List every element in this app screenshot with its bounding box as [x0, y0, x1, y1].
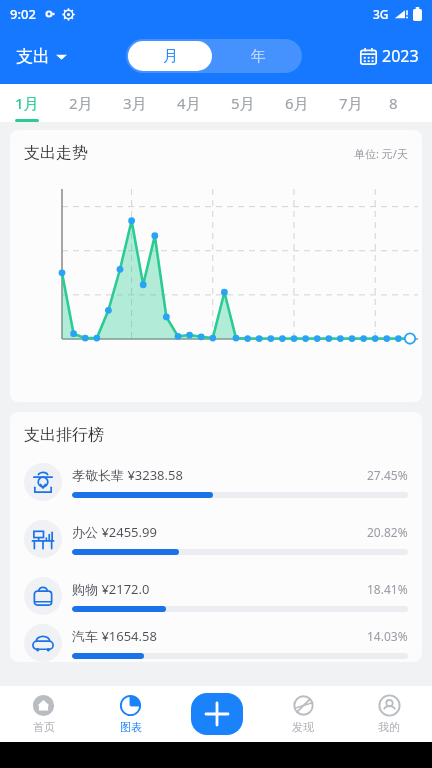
staticText: 月	[163, 47, 178, 66]
button[interactable]: 孝敬长辈 ¥3238.58	[10, 453, 422, 510]
staticText: 1月	[15, 93, 39, 113]
button[interactable]: 2023	[357, 41, 422, 71]
staticText: 14.03%	[367, 628, 408, 644]
button[interactable]: 月	[128, 41, 212, 71]
staticText: 4月	[177, 93, 201, 113]
staticText: 支出排行榜	[24, 425, 104, 445]
button[interactable]: 1月	[0, 84, 54, 122]
staticText: 7月	[339, 93, 363, 113]
button[interactable]: 8	[378, 84, 408, 122]
staticText: 首页	[33, 720, 55, 734]
staticText: 20.82%	[367, 524, 408, 540]
button[interactable]: 支出	[12, 42, 71, 71]
button[interactable]: 7月	[324, 84, 378, 122]
button[interactable]: 办公 ¥2455.99	[10, 510, 422, 567]
staticText: 支出走势	[24, 143, 88, 163]
staticText: 支出	[16, 46, 50, 67]
button[interactable]: 6月	[270, 84, 324, 122]
staticText: 9:02	[10, 5, 36, 23]
button[interactable]: 图表	[87, 686, 174, 742]
staticText: 发现	[292, 720, 314, 734]
staticText: 图表	[120, 720, 142, 734]
staticText: 3月	[123, 93, 147, 113]
button[interactable]: 首页	[0, 686, 87, 742]
button[interactable]: 我的	[346, 686, 432, 742]
staticText: 年	[251, 47, 266, 66]
staticText: 购物 ¥2172.0	[72, 580, 150, 598]
button[interactable]: 2月	[54, 84, 108, 122]
button[interactable]: 汽车 ¥1654.58	[10, 624, 422, 662]
staticText: 18.41%	[367, 581, 408, 597]
button[interactable]: 发现	[260, 686, 346, 742]
button[interactable]: 年	[214, 39, 302, 73]
staticText: 27.45%	[367, 467, 408, 483]
staticText: 办公 ¥2455.99	[72, 523, 157, 541]
staticText: 孝敬长辈 ¥3238.58	[72, 466, 183, 484]
staticText: 汽车 ¥1654.58	[72, 627, 157, 645]
button[interactable]: 5月	[216, 84, 270, 122]
staticText: 8	[389, 93, 398, 113]
staticText: 单位: 元/天	[354, 146, 408, 161]
staticText: 2023	[382, 45, 419, 67]
staticText: 5月	[231, 93, 255, 113]
staticText: 我的	[378, 720, 400, 734]
staticText: 2月	[69, 93, 93, 113]
button[interactable]: 3月	[108, 84, 162, 122]
button[interactable]: Add record	[191, 693, 243, 735]
button[interactable]: 4月	[162, 84, 216, 122]
button[interactable]: 购物 ¥2172.0	[10, 567, 422, 624]
staticText: 6月	[285, 93, 309, 113]
staticText: 3G	[373, 6, 389, 22]
